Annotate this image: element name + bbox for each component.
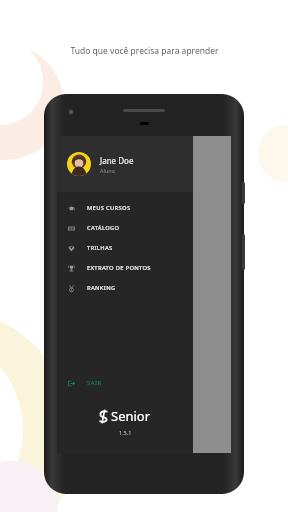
staticText: RANKING: [87, 284, 116, 292]
staticText: Tudo que você precisa para aprender: [70, 45, 219, 57]
button[interactable]: EXTRATO DE PONTOS: [57, 258, 193, 278]
button[interactable]: MEUS CURSOS: [57, 198, 193, 218]
staticText: TRILHAS: [87, 244, 113, 252]
staticText: Jane Doe: [100, 155, 134, 166]
staticText: Aluna: [100, 167, 115, 174]
staticText: Senior: [111, 407, 151, 425]
button[interactable]: RANKING: [57, 278, 193, 298]
staticText: MEUS CURSOS: [87, 204, 131, 212]
button[interactable]: Jane Doe: [57, 136, 193, 192]
button[interactable]: CATÁLOGO: [57, 218, 193, 238]
staticText: CATÁLOGO: [87, 224, 120, 232]
staticText: SAIR: [87, 379, 102, 387]
button[interactable]: SAIR: [57, 373, 193, 393]
staticText: EXTRATO DE PONTOS: [87, 264, 151, 272]
button[interactable]: TRILHAS: [57, 238, 193, 258]
staticText: 1.5.1: [119, 429, 132, 436]
